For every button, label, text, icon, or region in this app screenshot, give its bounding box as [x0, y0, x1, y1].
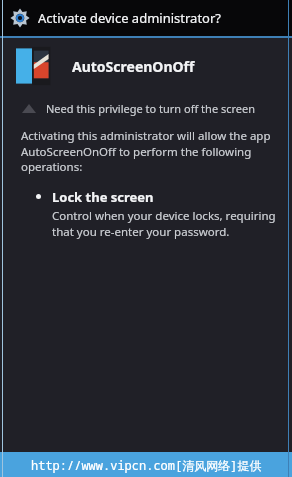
staticText: Lock the screen [52, 188, 154, 206]
button[interactable]: Lock the screen [0, 188, 292, 239]
button[interactable]: AutoScreenOnOff [0, 38, 292, 94]
other: Collapse [22, 104, 36, 113]
staticText: Need this privilege to turn off the scre… [46, 101, 256, 116]
staticText: Control when your device locks, requirin… [52, 208, 278, 239]
other: Device administrator settings [10, 8, 30, 28]
button[interactable]: Collapse [0, 94, 292, 122]
staticText: AutoScreenOnOff [72, 57, 195, 76]
staticText: Activating this administrator will allow… [21, 128, 276, 174]
staticText: http://www.vipcn.com[清风网络]提供 [31, 457, 262, 473]
staticText: Activate device administrator? [38, 9, 221, 27]
